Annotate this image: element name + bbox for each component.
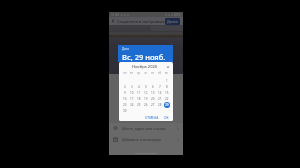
staticText: 15: [165, 91, 169, 95]
button[interactable]: 1: [164, 78, 170, 84]
button[interactable]: 15: [164, 90, 170, 96]
button[interactable]: 24: [129, 102, 135, 108]
button[interactable]: 12: [143, 90, 149, 96]
staticText: Добавить в календарь: [122, 137, 162, 142]
staticText: 11: [137, 91, 141, 95]
staticText: 1: [166, 79, 168, 83]
button[interactable]: 10: [129, 90, 135, 96]
button[interactable]: 9: [122, 90, 128, 96]
button[interactable]: 22: [164, 96, 170, 102]
staticText: 27: [151, 103, 155, 107]
staticText: 16: [123, 97, 127, 101]
button[interactable]: 3: [129, 84, 135, 90]
button[interactable]: 21: [157, 96, 163, 102]
staticText: 17: [130, 97, 134, 101]
button[interactable]: 2: [122, 84, 128, 90]
staticText: чт: [144, 71, 147, 75]
staticText: ОК: [164, 116, 169, 119]
staticText: 6: [152, 85, 154, 89]
staticText: 14: [158, 91, 162, 95]
staticText: 28: [158, 103, 162, 107]
staticText: 25: [137, 103, 141, 107]
staticText: 29: [165, 103, 169, 107]
staticText: Далее: [167, 19, 178, 24]
button[interactable]: 7: [157, 84, 163, 90]
staticText: Ноябрь 2020: [132, 64, 158, 69]
staticText: 21: [158, 97, 162, 101]
staticText: сб: [158, 71, 162, 75]
button[interactable]: 16: [122, 96, 128, 102]
button[interactable]: 13: [150, 90, 156, 96]
button[interactable]: 5: [143, 84, 149, 90]
staticText: 10: [130, 91, 134, 95]
staticText: ср: [137, 71, 141, 75]
button[interactable]: 17: [129, 96, 135, 102]
button[interactable]: Дата: [118, 45, 173, 62]
staticText: 3: [131, 85, 133, 89]
staticText: ОТМЕНА: [145, 116, 159, 119]
staticText: 12: [144, 91, 148, 95]
button[interactable]: 29: [164, 102, 170, 108]
staticText: 26: [144, 103, 148, 107]
staticText: вс: [165, 71, 168, 75]
button[interactable]: 30: [122, 108, 128, 114]
button[interactable]: 25: [136, 102, 142, 108]
staticText: 8: [166, 85, 168, 89]
staticText: 22: [165, 97, 169, 101]
staticText: 11:48: [111, 13, 120, 17]
staticText: вт: [130, 71, 133, 75]
staticText: 30: [123, 109, 127, 113]
button[interactable]: Место, адрес или ссылка: [109, 123, 183, 134]
button[interactable]: ОТМЕНА: [143, 114, 161, 121]
button[interactable]: 4: [136, 84, 142, 90]
staticText: 9: [124, 91, 126, 95]
staticText: 13: [151, 91, 155, 95]
staticText: 24: [130, 103, 134, 107]
staticText: 83%: [174, 13, 181, 17]
staticText: 2: [124, 85, 126, 89]
button[interactable]: 28: [157, 102, 163, 108]
button[interactable]: Добавить в календарь: [109, 134, 183, 145]
button[interactable]: 20: [150, 96, 156, 102]
button[interactable]: 11: [136, 90, 142, 96]
staticText: 7: [159, 85, 161, 89]
button[interactable]: Ноябрь 2020: [119, 62, 173, 71]
staticText: 23: [123, 103, 127, 107]
staticText: Сохранено в настройках: [117, 19, 165, 24]
staticText: Вс, 29 нояб.: [122, 52, 166, 62]
button[interactable]: 19: [143, 96, 149, 102]
button[interactable]: 14: [157, 90, 163, 96]
button[interactable]: 27: [150, 102, 156, 108]
staticText: пн: [123, 71, 127, 75]
button[interactable]: ОК: [162, 114, 171, 121]
staticText: 19: [144, 97, 148, 101]
button[interactable]: 6: [150, 84, 156, 90]
button[interactable]: 23: [122, 102, 128, 108]
staticText: пт: [151, 71, 154, 75]
button[interactable]: 26: [143, 102, 149, 108]
staticText: 20: [151, 97, 155, 101]
button[interactable]: 8: [164, 84, 170, 90]
staticText: Место, адрес или ссылка: [122, 126, 166, 131]
button[interactable]: 18: [136, 96, 142, 102]
button[interactable]: Back: [110, 18, 116, 24]
staticText: 18: [137, 97, 141, 101]
button[interactable]: Далее: [165, 18, 180, 25]
staticText: 5: [145, 85, 147, 89]
staticText: Дата: [122, 47, 129, 51]
staticText: 4: [138, 85, 140, 89]
